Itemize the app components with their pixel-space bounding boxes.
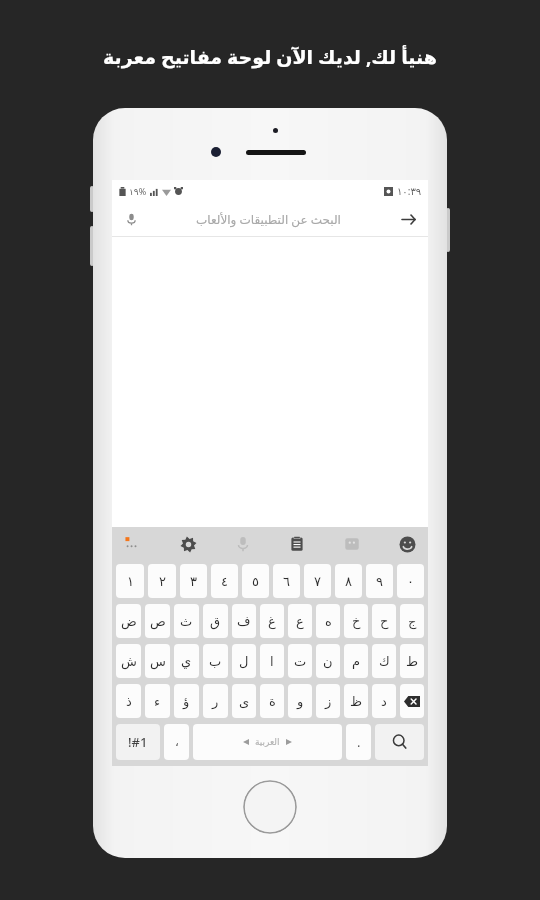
staticText: ٨ [345, 574, 352, 589]
button[interactable]: ر [203, 684, 228, 718]
button[interactable]: Search [398, 209, 418, 229]
staticText: ٤ [221, 574, 228, 589]
button[interactable]: ف [232, 604, 256, 638]
staticText: و [297, 694, 304, 709]
button[interactable]: !#1 [116, 724, 160, 760]
button[interactable]: ؤ [174, 684, 199, 718]
staticText: غ [268, 614, 276, 629]
button[interactable]: ص [145, 604, 170, 638]
button[interactable]: ب [203, 644, 228, 678]
button[interactable]: ث [174, 604, 199, 638]
button[interactable]: ح [372, 604, 396, 638]
staticText: ق [210, 614, 221, 629]
button[interactable]: ٣ [180, 564, 207, 598]
button[interactable]: Settings [173, 529, 203, 559]
button[interactable]: Space [193, 724, 342, 760]
staticText: العربية [255, 737, 280, 747]
staticText: ب [209, 654, 222, 669]
button[interactable]: ع [288, 604, 312, 638]
staticText: ز [325, 694, 332, 709]
button[interactable]: ي [174, 644, 199, 678]
button[interactable]: Voice search [122, 210, 140, 228]
button[interactable]: د [372, 684, 396, 718]
button[interactable]: ٠ [397, 564, 424, 598]
button[interactable]: و [288, 684, 312, 718]
button[interactable]: ٤ [211, 564, 238, 598]
button[interactable]: ظ [344, 684, 368, 718]
button[interactable]: ذ [116, 684, 141, 718]
staticText: !#1 [128, 733, 148, 751]
button[interactable]: Voice search [112, 202, 428, 236]
button[interactable]: ط [400, 644, 424, 678]
staticText: ٥ [252, 574, 259, 589]
staticText: ش [121, 654, 137, 669]
staticText: ج [408, 614, 417, 629]
button[interactable]: ل [232, 644, 256, 678]
staticText: ف [237, 614, 251, 629]
button[interactable]: Stickers [337, 529, 367, 559]
staticText: ه [325, 614, 332, 629]
button[interactable]: ك [372, 644, 396, 678]
staticText: ٢ [159, 574, 166, 589]
staticText: . [357, 733, 361, 751]
staticText: ن [323, 654, 333, 669]
staticText: ٦ [283, 574, 290, 589]
button[interactable]: Home [243, 780, 297, 834]
staticText: ع [296, 614, 304, 629]
button[interactable]: ، [164, 724, 189, 760]
button[interactable]: ٩ [366, 564, 393, 598]
button[interactable]: ن [316, 644, 340, 678]
staticText: ٩ [376, 574, 383, 589]
button[interactable]: ١ [116, 564, 144, 598]
staticText: ٠ [407, 574, 414, 589]
staticText: ل [239, 654, 249, 669]
button[interactable]: ٢ [148, 564, 176, 598]
button[interactable]: More options [118, 529, 148, 559]
staticText: البحث عن التطبيقات والألعاب [196, 211, 341, 227]
button[interactable]: ٥ [242, 564, 269, 598]
button[interactable]: ق [203, 604, 228, 638]
staticText: هنيأ لك, لديك الآن لوحة مفاتيح معربة [103, 44, 437, 70]
button[interactable]: Emoji [392, 529, 422, 559]
button[interactable]: غ [260, 604, 284, 638]
button[interactable]: ت [288, 644, 312, 678]
button[interactable]: ء [145, 684, 170, 718]
staticText: ض [121, 614, 137, 629]
button[interactable]: ه [316, 604, 340, 638]
button[interactable]: ة [260, 684, 284, 718]
button[interactable]: Clipboard [282, 529, 312, 559]
staticText: ك [379, 654, 390, 669]
button[interactable]: خ [344, 604, 368, 638]
staticText: ح [380, 614, 389, 629]
button[interactable]: . [346, 724, 371, 760]
button[interactable]: س [145, 644, 170, 678]
button[interactable]: Backspace [400, 684, 424, 718]
button[interactable]: Search [375, 724, 424, 760]
button[interactable]: ٦ [273, 564, 300, 598]
staticText: ٣ [190, 574, 197, 589]
button[interactable]: م [344, 644, 368, 678]
button[interactable]: Voice input [228, 529, 258, 559]
button[interactable]: ٧ [304, 564, 331, 598]
staticText: ا [270, 654, 274, 669]
button[interactable]: ش [116, 644, 141, 678]
staticText: ة [269, 694, 276, 709]
button[interactable]: ج [400, 604, 424, 638]
staticText: ٧ [314, 574, 321, 589]
staticText: ظ [350, 694, 363, 709]
staticText: د [381, 694, 387, 709]
staticText: ي [181, 654, 192, 669]
button[interactable]: ى [232, 684, 256, 718]
staticText: خ [352, 614, 361, 629]
staticText: ؤ [183, 694, 190, 709]
staticText: ى [239, 694, 250, 709]
button[interactable]: ض [116, 604, 141, 638]
staticText: ، [175, 735, 179, 749]
staticText: ط [406, 654, 419, 669]
button[interactable]: ز [316, 684, 340, 718]
staticText: ١٩% [129, 185, 147, 197]
button[interactable]: ا [260, 644, 284, 678]
button[interactable]: ٨ [335, 564, 362, 598]
staticText: ١٠:٣٩ [397, 184, 422, 198]
staticText: ١ [127, 574, 134, 589]
